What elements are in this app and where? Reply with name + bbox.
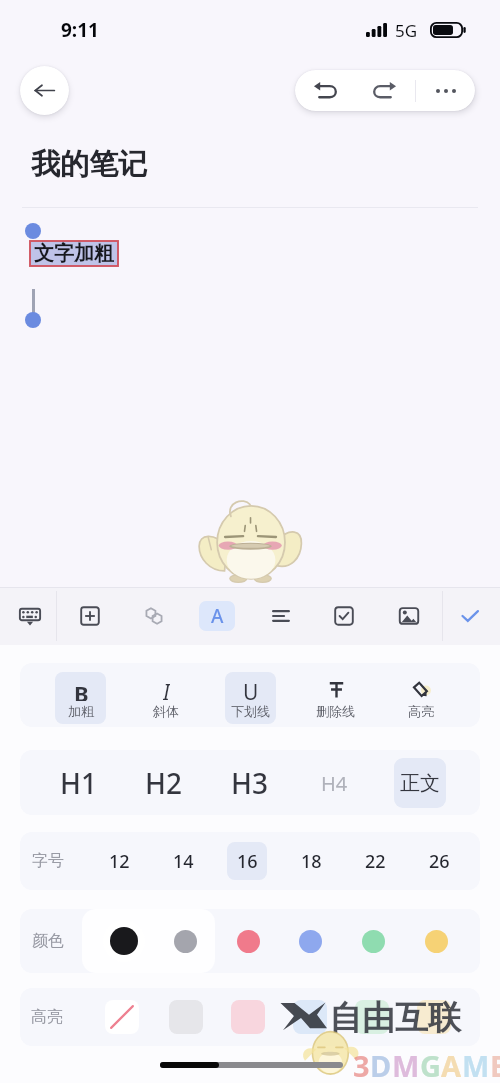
staticText: 5G: [395, 19, 418, 42]
staticText: 16: [237, 849, 258, 874]
button[interactable]: Highlight colour: [417, 1000, 451, 1034]
staticText: 高亮: [31, 1007, 63, 1027]
button[interactable]: Undo: [295, 70, 355, 111]
button[interactable]: Text colour: [425, 930, 448, 953]
button[interactable]: Text colour: [174, 930, 197, 953]
button[interactable]: Checklist: [318, 587, 370, 645]
staticText: 删除线: [316, 703, 355, 719]
button[interactable]: 高亮: [395, 672, 446, 724]
staticText: 颜色: [32, 931, 64, 951]
button[interactable]: 12: [99, 842, 139, 880]
staticText: 下划线: [231, 703, 270, 719]
staticText: U: [243, 678, 259, 701]
button[interactable]: Link: [128, 587, 180, 645]
staticText: E: [490, 1046, 500, 1083]
button[interactable]: H4: [308, 758, 360, 808]
staticText: 9:11: [61, 17, 99, 43]
staticText: H2: [145, 764, 182, 802]
staticText: 3: [353, 1046, 370, 1083]
button[interactable]: 删除线: [310, 672, 361, 724]
button[interactable]: Highlight colour: [105, 1000, 139, 1034]
button[interactable]: 14: [163, 842, 203, 880]
staticText: H1: [60, 764, 97, 802]
staticText: 14: [173, 849, 194, 874]
button[interactable]: H1: [52, 758, 104, 808]
staticText: 26: [429, 849, 450, 874]
button[interactable]: Back: [20, 66, 69, 115]
button[interactable]: More options: [416, 70, 475, 111]
button[interactable]: Hide keyboard: [4, 587, 56, 645]
button[interactable]: Highlight colour: [169, 1000, 203, 1034]
staticText: B: [74, 678, 89, 701]
staticText: D: [370, 1046, 392, 1083]
staticText: 斜体: [153, 703, 179, 719]
button[interactable]: Align: [255, 587, 307, 645]
staticText: 我的笔记: [31, 146, 147, 183]
staticText: H4: [321, 770, 348, 797]
staticText: M: [462, 1046, 490, 1083]
staticText: A: [211, 603, 224, 629]
button[interactable]: 18: [291, 842, 331, 880]
button[interactable]: H3: [223, 758, 275, 808]
button[interactable]: B: [55, 672, 106, 724]
button[interactable]: Insert: [64, 587, 116, 645]
button[interactable]: Text colour: [103, 920, 145, 962]
button[interactable]: Text colour: [362, 930, 385, 953]
staticText: 文字加粗: [34, 241, 114, 266]
button[interactable]: Done: [444, 587, 496, 645]
button[interactable]: I: [140, 672, 191, 724]
button[interactable]: Image: [383, 587, 435, 645]
staticText: 自由互联: [329, 997, 461, 1039]
button[interactable]: 正文: [394, 758, 446, 808]
button[interactable]: 22: [355, 842, 395, 880]
staticText: 22: [365, 849, 386, 874]
staticText: 加粗: [68, 703, 94, 719]
staticText: 12: [109, 849, 130, 874]
staticText: G: [420, 1046, 441, 1083]
button[interactable]: Highlight colour: [231, 1000, 265, 1034]
staticText: A: [441, 1046, 462, 1083]
staticText: I: [163, 678, 170, 701]
staticText: 正文: [400, 771, 440, 796]
button[interactable]: Text colour: [299, 930, 322, 953]
staticText: 字号: [32, 851, 64, 871]
staticText: 18: [301, 849, 322, 874]
staticText: M: [392, 1046, 420, 1083]
button[interactable]: 26: [419, 842, 459, 880]
button[interactable]: Text format: [191, 587, 243, 645]
staticText: 高亮: [408, 703, 434, 719]
staticText: H3: [231, 764, 268, 802]
button[interactable]: U: [225, 672, 276, 724]
button[interactable]: Highlight colour: [293, 1000, 327, 1034]
button[interactable]: Highlight colour: [355, 1000, 389, 1034]
button[interactable]: 16: [227, 842, 267, 880]
button[interactable]: H2: [137, 758, 189, 808]
button[interactable]: Redo: [355, 70, 415, 111]
button[interactable]: Text colour: [237, 930, 260, 953]
